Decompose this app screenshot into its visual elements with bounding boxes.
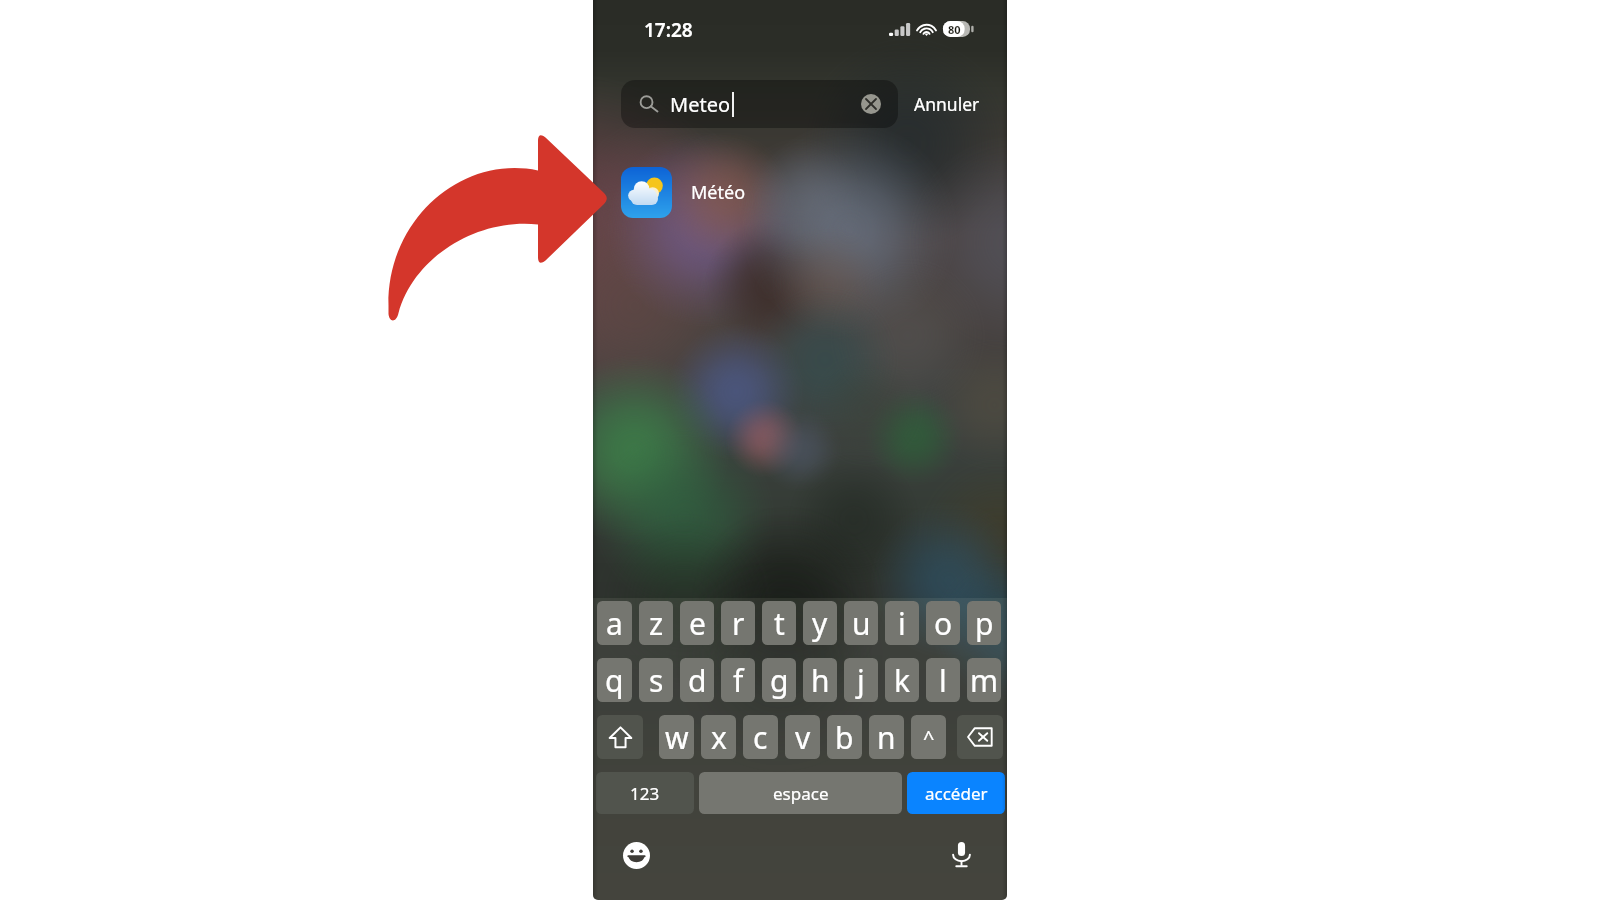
button[interactable]: Majuscule	[597, 715, 643, 759]
button[interactable]: t	[762, 601, 796, 645]
button[interactable]: ^	[911, 715, 946, 759]
button[interactable]: r	[721, 601, 755, 645]
staticText: k	[894, 660, 911, 701]
staticText: ^	[923, 724, 935, 751]
staticText: f	[733, 660, 744, 701]
button[interactable]: n	[869, 715, 904, 759]
button[interactable]: espace	[699, 772, 902, 814]
button[interactable]: Meteo	[621, 80, 898, 128]
staticText: Annuler	[914, 92, 980, 116]
staticText: l	[939, 660, 947, 701]
button[interactable]: i	[885, 601, 919, 645]
button[interactable]: p	[967, 601, 1001, 645]
staticText: u	[852, 603, 871, 644]
button[interactable]: m	[967, 658, 1001, 702]
staticText: e	[689, 603, 706, 644]
staticText: 17:28	[644, 17, 693, 43]
button[interactable]: d	[680, 658, 714, 702]
staticText: p	[975, 603, 994, 644]
button[interactable]: Supprimer	[957, 715, 1003, 759]
button[interactable]: Effacer	[861, 94, 881, 114]
button[interactable]: u	[844, 601, 878, 645]
button[interactable]: h	[803, 658, 837, 702]
staticText: 80	[948, 22, 961, 37]
staticText: z	[649, 603, 664, 644]
staticText: j	[857, 660, 865, 701]
button[interactable]: o	[926, 601, 960, 645]
staticText: i	[898, 603, 906, 644]
staticText: h	[811, 660, 830, 701]
button[interactable]: Météo	[593, 159, 1007, 226]
staticText: Meteo	[670, 91, 731, 118]
button[interactable]: v	[785, 715, 820, 759]
staticText: x	[711, 717, 727, 758]
button[interactable]: Emoji	[622, 841, 650, 869]
button[interactable]: b	[827, 715, 862, 759]
staticText: v	[795, 717, 811, 758]
button[interactable]: c	[743, 715, 778, 759]
button[interactable]: accéder	[907, 772, 1005, 814]
button[interactable]: f	[721, 658, 755, 702]
staticText: s	[649, 660, 664, 701]
button[interactable]: j	[844, 658, 878, 702]
button[interactable]: l	[926, 658, 960, 702]
button[interactable]: z	[639, 601, 673, 645]
button[interactable]: x	[701, 715, 736, 759]
button[interactable]: k	[885, 658, 919, 702]
staticText: a	[606, 603, 623, 644]
button[interactable]: s	[639, 658, 673, 702]
button[interactable]: Dictée	[947, 841, 975, 869]
staticText: o	[934, 603, 953, 644]
staticText: q	[605, 660, 624, 701]
button[interactable]: 123	[596, 772, 694, 814]
staticText: Météo	[691, 180, 746, 205]
button[interactable]: y	[803, 601, 837, 645]
staticText: d	[688, 660, 707, 701]
button[interactable]: g	[762, 658, 796, 702]
button[interactable]: e	[680, 601, 714, 645]
staticText: t	[774, 603, 785, 644]
button[interactable]: Annuler	[910, 81, 984, 127]
staticText: w	[665, 717, 689, 758]
button[interactable]: q	[597, 658, 632, 702]
button[interactable]: a	[597, 601, 632, 645]
staticText: c	[753, 717, 768, 758]
staticText: g	[770, 660, 789, 701]
staticText: b	[835, 717, 854, 758]
staticText: n	[877, 717, 896, 758]
button[interactable]: w	[659, 715, 694, 759]
staticText: r	[732, 603, 745, 644]
staticText: accéder	[925, 782, 988, 805]
staticText: m	[970, 660, 999, 701]
staticText: y	[812, 603, 828, 644]
staticText: espace	[773, 782, 829, 805]
staticText: 123	[630, 782, 660, 805]
